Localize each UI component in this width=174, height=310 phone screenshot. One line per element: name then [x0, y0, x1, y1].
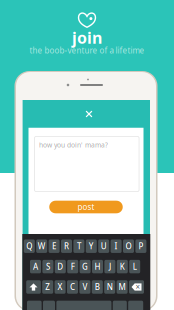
button[interactable]: N — [104, 280, 115, 294]
staticText: G — [82, 261, 88, 272]
button[interactable]: O — [123, 239, 134, 253]
button[interactable]: J — [104, 260, 115, 273]
staticText: W — [38, 241, 46, 251]
staticText: the boob-venture of a lifetime — [29, 45, 144, 56]
button[interactable]: R — [61, 239, 72, 253]
button[interactable]: W — [36, 239, 47, 253]
button[interactable]: C — [67, 280, 78, 294]
button[interactable]: I — [111, 239, 122, 253]
staticText: Q — [26, 241, 32, 251]
staticText: Z — [45, 282, 50, 292]
staticText: J — [109, 261, 111, 272]
staticText: D — [57, 261, 63, 272]
staticText: U — [101, 241, 107, 251]
button[interactable]: K — [117, 260, 128, 273]
staticText: C — [70, 282, 75, 292]
staticText: K — [120, 261, 125, 272]
button[interactable]: post — [49, 201, 123, 213]
staticText: L — [133, 261, 137, 272]
staticText: M — [119, 282, 126, 292]
staticText: Y — [89, 241, 94, 251]
button[interactable]: G — [80, 260, 91, 273]
button[interactable]: Y — [86, 239, 97, 253]
staticText: V — [82, 282, 87, 292]
staticText: X — [58, 282, 63, 292]
button[interactable]: Delete — [129, 280, 144, 294]
staticText: R — [64, 241, 69, 251]
button[interactable]: Q — [24, 239, 35, 253]
button[interactable]: Z — [42, 280, 53, 294]
button[interactable]: A — [30, 260, 41, 273]
button[interactable]: H — [92, 260, 103, 273]
button[interactable]: Close — [79, 104, 98, 123]
button[interactable]: F — [67, 260, 78, 273]
staticText: post — [77, 202, 94, 212]
button[interactable]: S — [42, 260, 53, 273]
staticText: O — [125, 241, 131, 251]
staticText: I — [115, 241, 118, 251]
staticText: H — [94, 261, 100, 272]
button[interactable]: V — [79, 280, 90, 294]
button[interactable]: T — [73, 239, 84, 253]
staticText: S — [46, 261, 50, 272]
staticText: × — [135, 281, 140, 292]
staticText: N — [107, 282, 113, 292]
button[interactable] — [128, 301, 143, 310]
button[interactable]: L — [129, 260, 140, 273]
staticText: how you doin' mama? — [39, 140, 108, 149]
button[interactable]: P — [135, 239, 146, 253]
button[interactable]: M — [117, 280, 128, 294]
staticText: A — [33, 261, 38, 272]
staticText: E — [52, 241, 56, 251]
staticText: join — [72, 27, 102, 48]
button[interactable]: E — [49, 239, 60, 253]
button[interactable]: Shift — [26, 280, 41, 294]
staticText: P — [138, 241, 143, 251]
staticText: F — [71, 261, 75, 272]
button[interactable] — [27, 301, 42, 310]
button[interactable] — [113, 301, 127, 310]
button[interactable]: U — [98, 239, 109, 253]
button[interactable]: D — [55, 260, 66, 273]
staticText: B — [95, 282, 100, 292]
button[interactable]: B — [92, 280, 103, 294]
button[interactable]: X — [55, 280, 66, 294]
staticText: T — [77, 241, 81, 251]
